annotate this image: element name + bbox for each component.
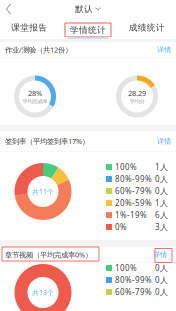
staticText: 签到率（平均签到率17%） bbox=[5, 136, 89, 146]
button[interactable]: 详情 bbox=[149, 250, 171, 259]
button[interactable]: 课堂报告 bbox=[0, 18, 59, 37]
staticText: 1人 bbox=[155, 162, 168, 172]
staticText: 100% bbox=[115, 162, 137, 172]
staticText: 60%-79% bbox=[115, 287, 152, 297]
staticText: 章节视频（平均完成率0%） bbox=[5, 250, 92, 260]
staticText: 详情 bbox=[157, 137, 171, 146]
staticText: 3人 bbox=[155, 222, 168, 232]
staticText: 80%-99% bbox=[115, 174, 152, 184]
button[interactable]: 默认 bbox=[75, 3, 101, 14]
button[interactable]: 详情 bbox=[157, 137, 171, 146]
staticText: 成绩统计 bbox=[129, 22, 165, 33]
staticText: 28.29 bbox=[128, 88, 146, 98]
staticText: 共11个 bbox=[32, 187, 54, 196]
staticText: 6人 bbox=[155, 210, 168, 220]
staticText: 20%-59% bbox=[115, 198, 152, 208]
button[interactable]: 详情 bbox=[157, 45, 171, 54]
staticText: 1人 bbox=[155, 198, 168, 208]
staticText: 学情统计 bbox=[70, 24, 106, 35]
staticText: 1%-19% bbox=[115, 210, 147, 220]
staticText: 0人 bbox=[155, 287, 168, 297]
staticText: 共13个 bbox=[32, 288, 54, 297]
staticText: 100% bbox=[115, 263, 137, 273]
staticText: 平均完成率 bbox=[22, 98, 47, 105]
staticText: 0人 bbox=[155, 174, 168, 184]
staticText: 详情 bbox=[157, 45, 171, 54]
staticText: 作业/测验（共12份） bbox=[5, 45, 72, 55]
button[interactable]: Back bbox=[2, 0, 20, 18]
button[interactable]: 学情统计 bbox=[59, 18, 117, 37]
staticText: 28% bbox=[28, 88, 42, 98]
button[interactable]: 成绩统计 bbox=[117, 18, 176, 37]
staticText: 0% bbox=[115, 222, 127, 232]
staticText: 详情 bbox=[153, 250, 167, 259]
staticText: 课堂报告 bbox=[11, 22, 47, 33]
staticText: 0人 bbox=[155, 275, 168, 285]
staticText: 0人 bbox=[155, 186, 168, 196]
staticText: 平均分 bbox=[129, 98, 144, 105]
staticText: 0人 bbox=[155, 263, 168, 273]
staticText: 80%-99% bbox=[115, 275, 152, 285]
staticText: 60%-79% bbox=[115, 186, 152, 196]
staticText: 默认 bbox=[75, 3, 93, 14]
